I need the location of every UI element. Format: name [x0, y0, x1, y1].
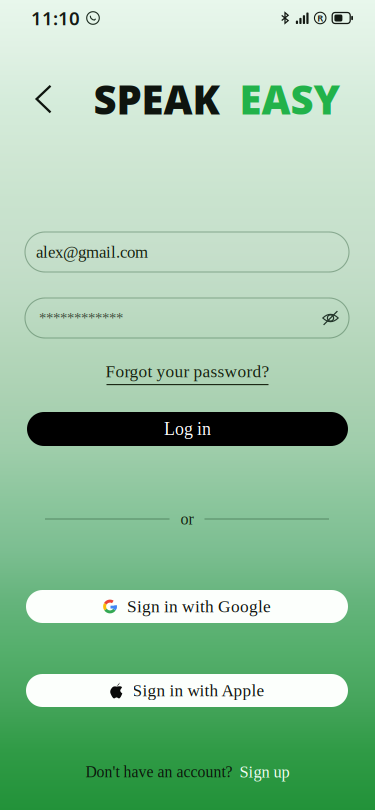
staticText: Log in	[164, 419, 211, 439]
staticText: alex@gmail.com	[36, 243, 148, 261]
staticText: *	[88, 310, 95, 326]
staticText: *	[60, 310, 67, 326]
staticText: Sign up	[239, 763, 289, 781]
button[interactable]: Show password	[314, 310, 339, 325]
staticText: *	[116, 310, 123, 326]
button[interactable]: Log in	[0, 412, 375, 446]
button[interactable]: Back	[0, 74, 70, 124]
button[interactable]: Sign in with Google	[0, 590, 375, 623]
staticText: R	[317, 12, 323, 24]
staticText: *	[46, 310, 53, 326]
staticText: *	[109, 310, 116, 326]
staticText: *	[95, 310, 102, 326]
staticText: SPEAK	[93, 72, 219, 125]
staticText: Sign in with Google	[127, 597, 271, 616]
button[interactable]: Forgot your password?	[105, 362, 269, 385]
staticText: Sign in with Apple	[132, 681, 264, 700]
staticText: Don't have an account?	[85, 763, 232, 781]
staticText: 11:10	[31, 6, 80, 30]
staticText: *	[53, 310, 60, 326]
staticText: *	[67, 310, 74, 326]
staticText: Forgot your password?	[105, 362, 269, 381]
staticText: EASY	[239, 72, 340, 125]
button[interactable]: Sign in with Apple	[0, 674, 375, 707]
staticText: *	[74, 310, 81, 326]
button[interactable]: Sign up	[239, 763, 289, 781]
staticText: *	[102, 310, 109, 326]
staticText: *	[39, 310, 46, 326]
staticText: *	[81, 310, 88, 326]
staticText: or	[180, 510, 193, 528]
